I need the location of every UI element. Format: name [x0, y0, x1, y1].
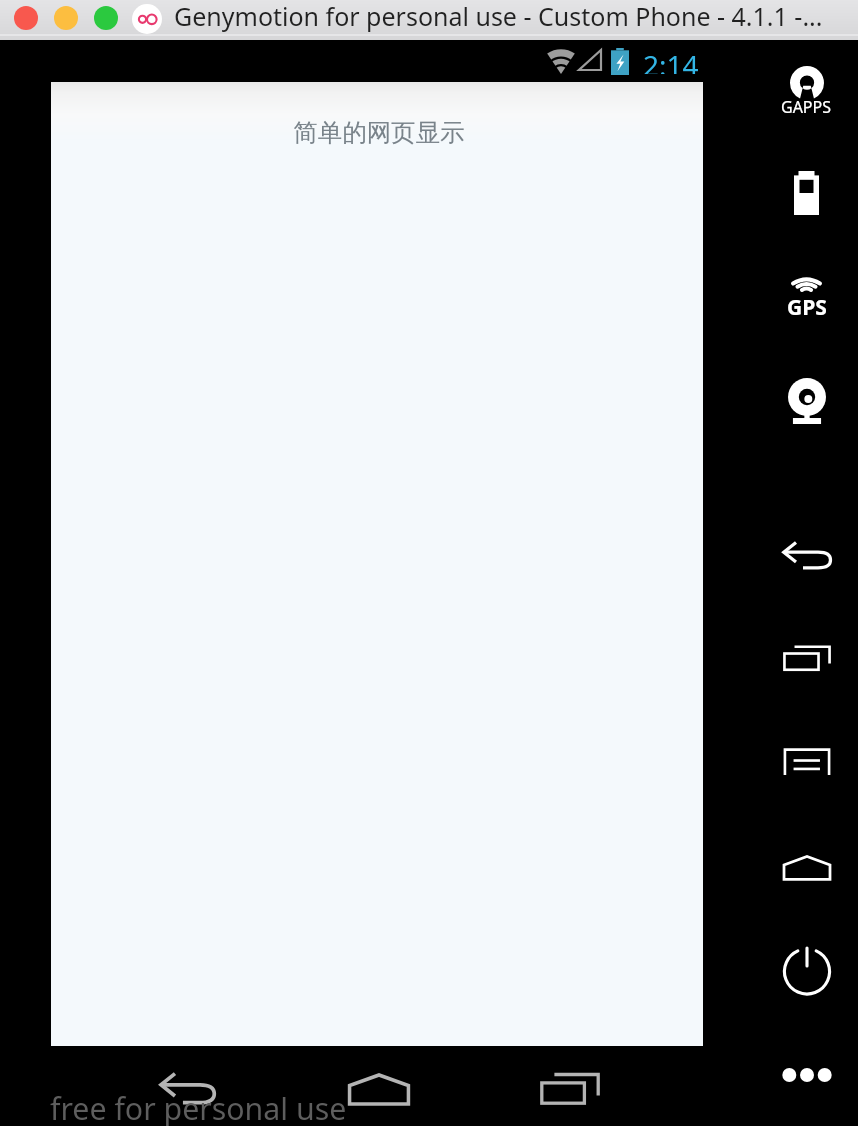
button[interactable]: GAPPS — [729, 66, 858, 122]
button[interactable]: Recent apps — [729, 633, 858, 683]
button[interactable]: Minimise — [54, 6, 78, 30]
button[interactable]: Home — [299, 1051, 459, 1126]
staticText: Genymotion for personal use - Custom Pho… — [174, 0, 823, 33]
staticText: GPS — [787, 293, 827, 322]
button[interactable]: Camera — [729, 376, 858, 426]
button[interactable]: Home — [729, 843, 858, 893]
button[interactable]: Back — [107, 1050, 267, 1126]
button[interactable]: Close — [14, 6, 38, 30]
staticText: GAPPS — [781, 96, 832, 118]
button[interactable]: More options — [729, 1055, 858, 1095]
staticText: 2:14 — [643, 46, 699, 74]
button[interactable]: Back — [729, 530, 858, 580]
staticText: free for personal use — [50, 1088, 347, 1126]
button[interactable]: Recent apps — [490, 1050, 650, 1126]
button[interactable]: Battery — [729, 165, 858, 221]
button[interactable]: Power — [729, 940, 858, 1000]
button[interactable]: GPS — [729, 272, 858, 322]
button[interactable]: Menu — [729, 737, 858, 787]
button[interactable]: Maximise — [94, 6, 118, 30]
staticText: 简单的网页显示 — [53, 117, 705, 148]
